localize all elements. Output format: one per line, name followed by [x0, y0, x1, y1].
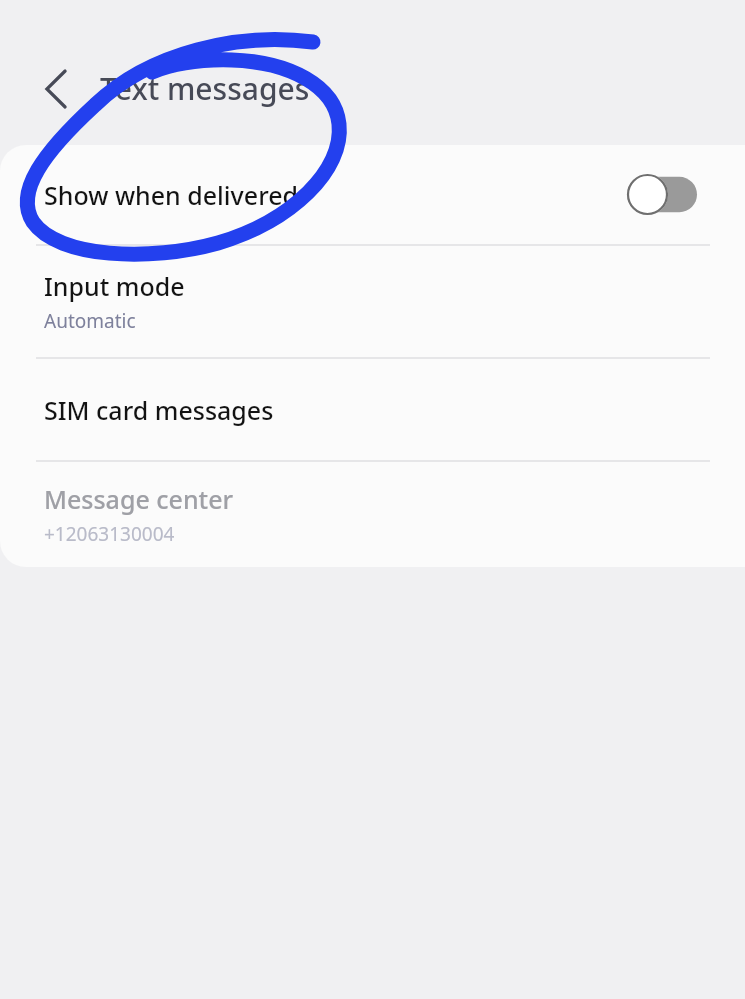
staticText: Automatic [44, 308, 136, 334]
staticText: Input mode [44, 269, 185, 303]
button[interactable]: Message center [0, 462, 745, 567]
staticText: SIM card messages [44, 393, 274, 427]
button[interactable]: Show when delivered [0, 145, 745, 244]
staticText: Show when delivered [44, 178, 299, 212]
button[interactable]: Input mode [0, 246, 745, 357]
staticText: +12063130004 [44, 521, 175, 547]
button[interactable]: SIM card messages [0, 359, 745, 460]
button[interactable]: Show when delivered toggle, off [627, 174, 697, 215]
button[interactable]: Back [30, 63, 82, 115]
staticText: Text messages [100, 68, 310, 109]
staticText: Message center [44, 482, 234, 516]
